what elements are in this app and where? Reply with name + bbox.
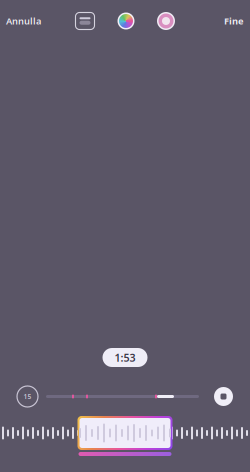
staticText: 15 xyxy=(23,392,31,401)
button[interactable]: Annulla xyxy=(6,15,41,27)
button[interactable]: Colour xyxy=(117,12,135,30)
button[interactable]: Stop xyxy=(214,387,233,406)
staticText: 1:53 xyxy=(114,350,135,365)
button[interactable]: Stickers xyxy=(157,12,175,30)
staticText: Fine xyxy=(224,15,244,27)
button[interactable]: Text xyxy=(75,12,95,30)
staticText: Annulla xyxy=(6,15,41,27)
button[interactable]: Fine xyxy=(224,15,244,27)
button[interactable]: Skip back 15 seconds xyxy=(17,386,38,407)
